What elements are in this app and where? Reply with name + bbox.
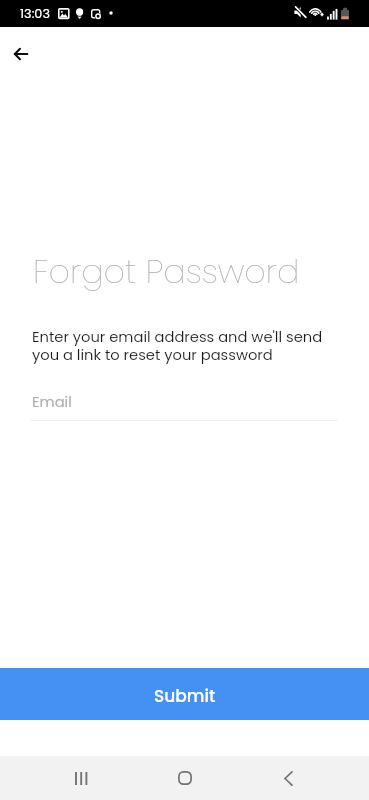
- staticText: Enter your email address and we'll send …: [32, 327, 332, 365]
- staticText: Forgot Password: [33, 248, 300, 294]
- button[interactable]: Submit: [0, 668, 369, 720]
- staticText: Email: [32, 392, 72, 413]
- button[interactable]: Recent apps: [59, 756, 103, 800]
- staticText: Submit: [154, 684, 216, 708]
- button[interactable]: Back: [5, 38, 37, 70]
- button[interactable]: Home: [163, 756, 207, 800]
- staticText: 13:03: [20, 5, 50, 23]
- button[interactable]: Back: [266, 756, 310, 800]
